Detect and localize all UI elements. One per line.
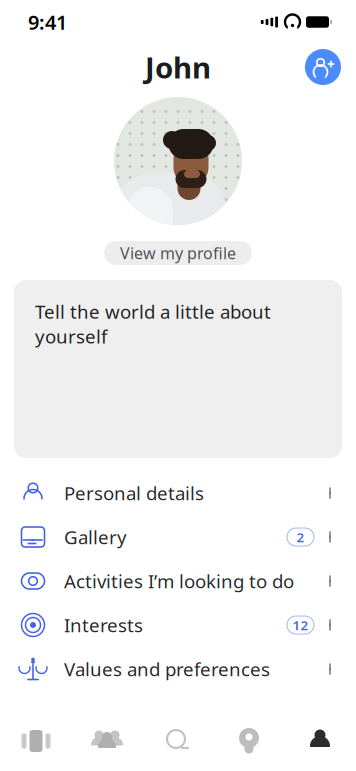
staticText: Tell the world a little about yourself [35, 299, 271, 349]
button[interactable]: Personal details [0, 471, 356, 515]
button[interactable]: Search [142, 711, 213, 771]
staticText: Values and preferences [64, 657, 270, 681]
staticText: John [145, 47, 211, 86]
staticText: 12 [292, 616, 308, 634]
staticText: 2 [296, 528, 304, 546]
button[interactable]: Friends [71, 711, 142, 771]
staticText: 9:41 [28, 9, 67, 35]
button[interactable]: View my profile [104, 241, 252, 265]
staticText: Gallery [64, 525, 127, 549]
button[interactable]: Add contact [305, 49, 341, 85]
staticText: Interests [64, 613, 143, 637]
staticText: View my profile [120, 242, 236, 264]
button[interactable]: Gallery [0, 515, 356, 559]
button[interactable]: Tell the world a little about yourself [14, 280, 342, 458]
button[interactable]: Places [213, 711, 284, 771]
button[interactable]: Discover [0, 711, 71, 771]
button[interactable]: Interests [0, 603, 356, 647]
button[interactable]: Activities I’m looking to do [0, 559, 356, 603]
button[interactable]: Profile [284, 711, 355, 771]
staticText: Activities I’m looking to do [64, 569, 294, 593]
button[interactable]: Values and preferences [0, 647, 356, 691]
staticText: Personal details [64, 481, 204, 505]
